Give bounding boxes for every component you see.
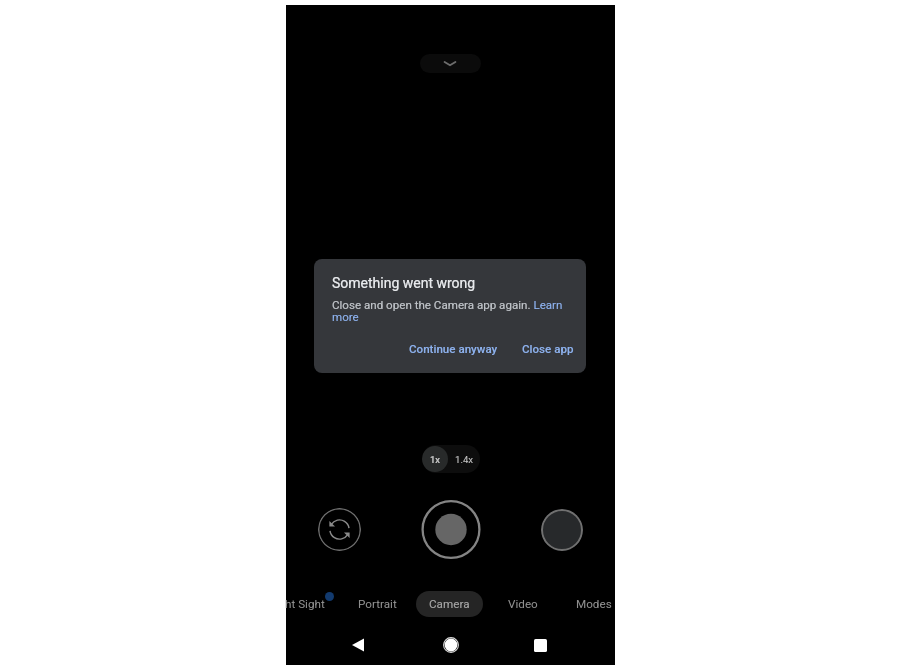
button[interactable]: Video — [500, 591, 546, 617]
staticText: Close app — [522, 342, 574, 356]
button[interactable]: Portrait — [350, 591, 405, 617]
staticText: 1x — [430, 454, 440, 465]
staticText: Modes — [576, 597, 612, 611]
button[interactable]: 1.4x — [448, 445, 480, 473]
button[interactable]: Take photo — [420, 499, 482, 560]
button[interactable]: Expand camera options — [420, 54, 481, 73]
button[interactable]: 1x — [422, 446, 448, 472]
staticText: 1.4x — [455, 454, 474, 465]
button[interactable]: Close app — [516, 338, 580, 360]
button[interactable]: Home — [433, 627, 469, 663]
button[interactable]: Recent apps — [522, 627, 558, 663]
staticText: Close and open the Camera app again. Lea… — [332, 298, 570, 323]
staticText: Camera — [429, 597, 470, 611]
staticText: Something went wrong — [332, 275, 476, 291]
staticText: ht Sight — [285, 597, 325, 611]
staticText: Continue anyway — [409, 342, 498, 356]
button[interactable]: Back — [340, 627, 376, 663]
button[interactable]: Photo gallery — [541, 509, 583, 551]
staticText: Video — [508, 597, 538, 611]
button[interactable]: Switch camera — [318, 508, 361, 551]
button[interactable]: ht Sight — [277, 591, 342, 617]
button[interactable]: Modes — [568, 591, 620, 617]
button[interactable]: Camera — [416, 591, 483, 617]
button[interactable]: Continue anyway — [403, 338, 504, 360]
staticText: Portrait — [358, 597, 397, 611]
